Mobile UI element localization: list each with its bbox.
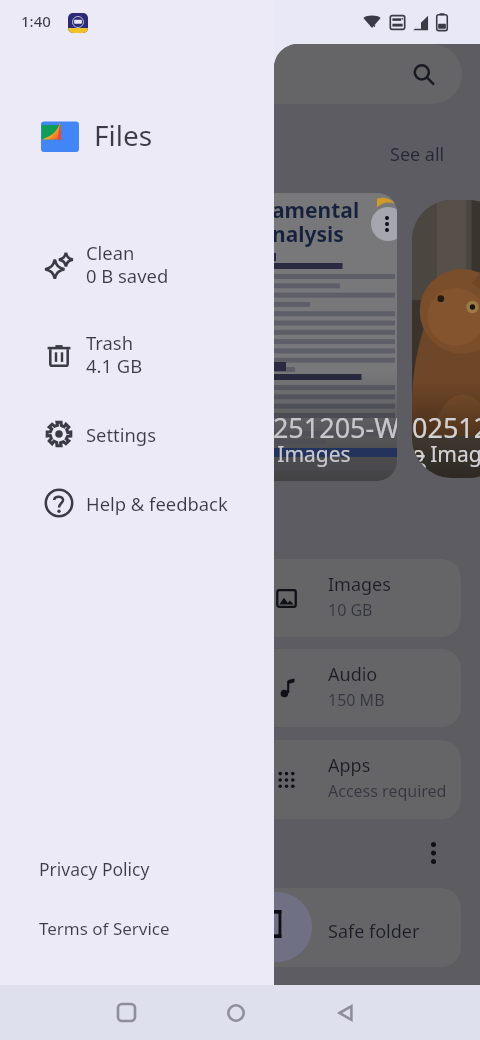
staticText: Clean xyxy=(86,240,135,265)
button[interactable]: Search xyxy=(150,44,462,104)
button[interactable]: Settings xyxy=(0,406,274,462)
button[interactable]: 0251205 xyxy=(412,200,480,478)
button[interactable]: amental xyxy=(214,193,397,481)
staticText: 150 MB xyxy=(328,689,385,711)
button[interactable]: Safe folder xyxy=(214,888,461,967)
button[interactable]: Clean xyxy=(0,232,274,298)
staticText: amental xyxy=(272,196,360,225)
staticText: Terms of Service xyxy=(39,917,170,940)
staticText: 0251205 xyxy=(412,409,480,478)
staticText: Help & feedback xyxy=(86,491,228,516)
button[interactable]: Apps xyxy=(214,740,461,819)
staticText: 1:40 xyxy=(21,11,51,31)
button[interactable]: Recent apps xyxy=(102,985,150,1040)
button[interactable]: Privacy Policy xyxy=(24,848,165,890)
button[interactable]: Home xyxy=(212,985,260,1040)
button[interactable]: Back xyxy=(322,985,370,1040)
staticText: 20251205-WA xyxy=(242,409,397,446)
button[interactable]: More options xyxy=(419,833,447,873)
staticText: 0 B saved xyxy=(86,263,169,288)
staticText: nalysis xyxy=(272,220,344,249)
button[interactable]: Files xyxy=(27,107,167,165)
staticText: Apps xyxy=(328,753,371,778)
staticText: Files xyxy=(94,116,153,154)
button[interactable]: Trash xyxy=(0,322,274,388)
staticText: See all xyxy=(390,142,445,167)
staticText: Access required xyxy=(328,780,447,802)
button[interactable]: Images xyxy=(214,559,461,637)
button[interactable]: Help & feedback xyxy=(0,475,274,531)
staticText: Safe folder xyxy=(328,919,420,944)
staticText: o Images xyxy=(412,440,480,469)
button[interactable]: Audio xyxy=(214,649,461,727)
staticText: 10 GB xyxy=(328,599,373,621)
staticText: 4.1 GB xyxy=(86,353,143,378)
staticText: Images xyxy=(328,572,391,597)
staticText: Privacy Policy xyxy=(39,857,150,881)
staticText: Audio xyxy=(328,662,378,687)
button[interactable]: See all xyxy=(382,137,453,172)
staticText: Settings xyxy=(86,422,156,447)
button[interactable]: Terms of Service xyxy=(24,908,185,949)
staticText: pp Images xyxy=(246,440,351,469)
staticText: Trash xyxy=(86,330,134,355)
